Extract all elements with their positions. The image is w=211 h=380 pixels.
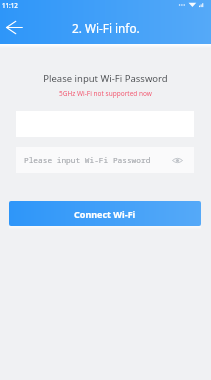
button[interactable]: Connect Wi-Fi: [9, 201, 201, 226]
button[interactable]: Show password: [167, 150, 187, 170]
staticText: Please input Wi-Fi Password: [24, 155, 151, 166]
staticText: 5GHz Wi-Fi not supported now: [0, 89, 211, 98]
button[interactable]: Please input Wi-Fi Password: [16, 147, 194, 173]
staticText: Connect Wi-Fi: [74, 208, 136, 220]
button[interactable]: Back: [0, 13, 28, 41]
staticText: 2. Wi-Fi info.: [72, 20, 140, 36]
staticText: Please input Wi-Fi Password: [0, 72, 211, 85]
staticText: 11:12: [2, 1, 18, 9]
